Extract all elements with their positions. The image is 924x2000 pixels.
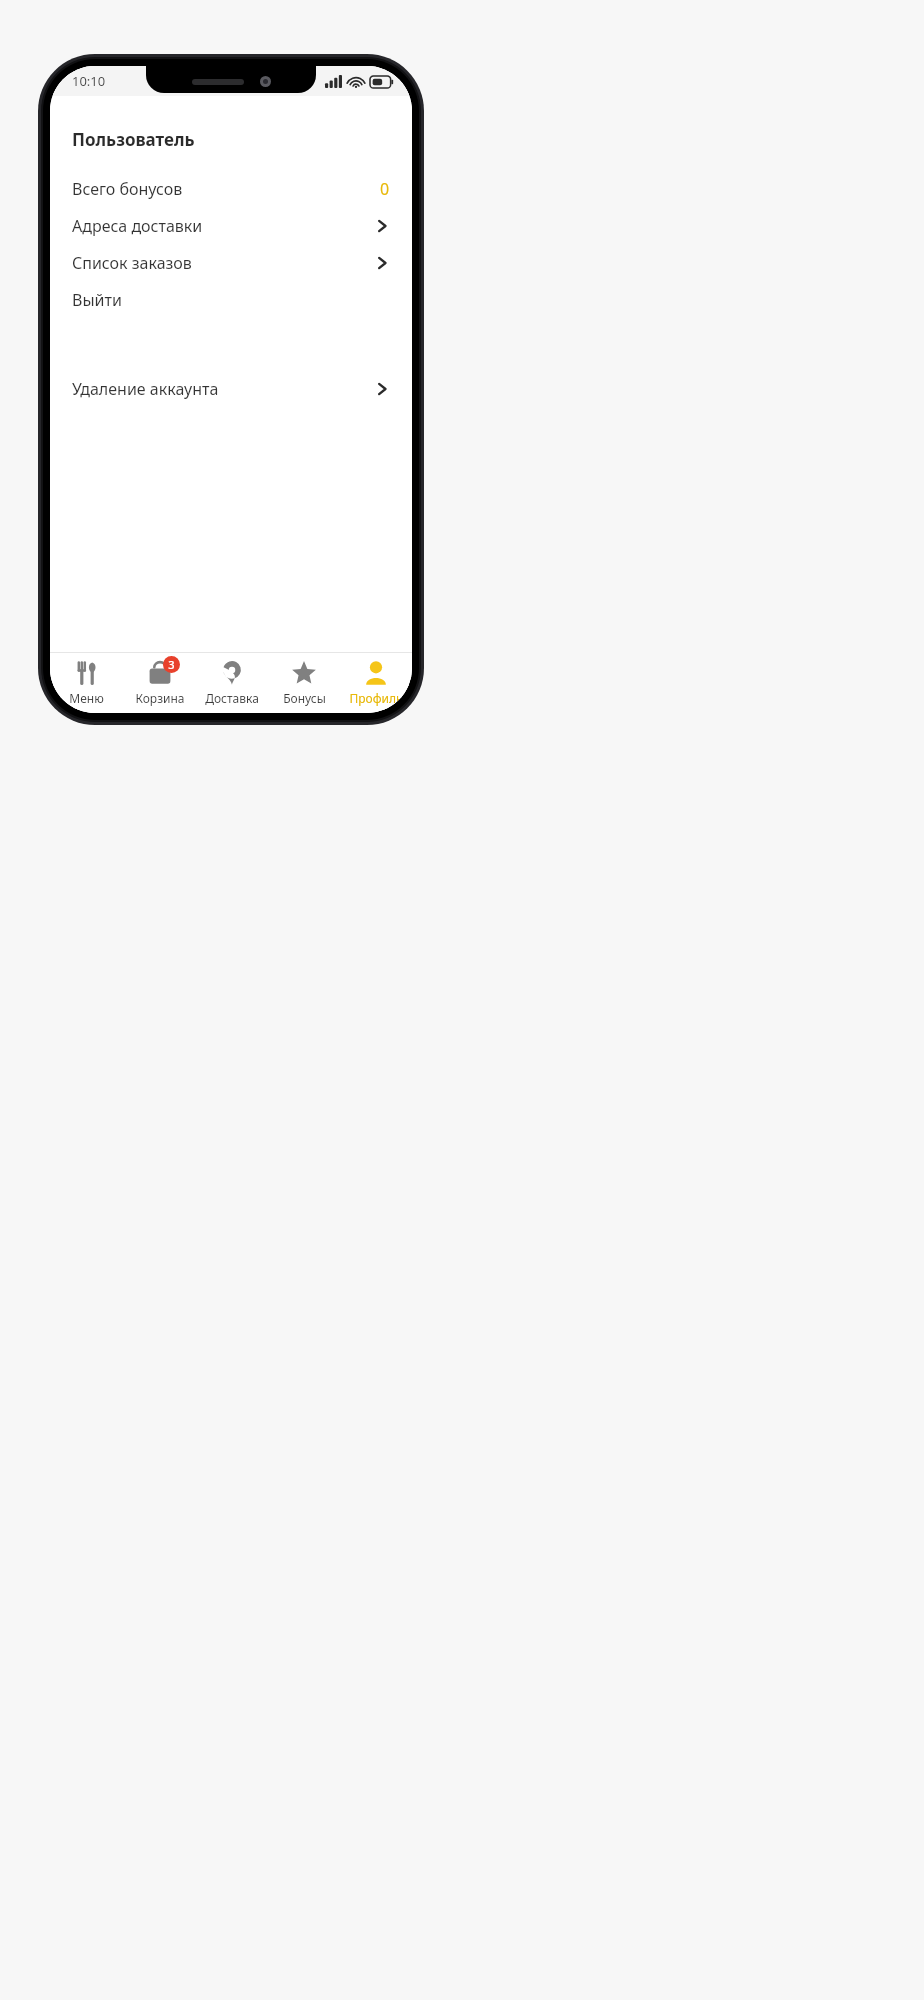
staticText: Бонусы <box>283 690 326 706</box>
button[interactable]: Профиль <box>340 653 412 713</box>
button[interactable]: Всего бонусов <box>50 170 412 207</box>
button[interactable]: Доставка <box>196 653 268 713</box>
button[interactable]: Меню <box>50 653 123 713</box>
button[interactable]: Выйти <box>50 281 412 318</box>
staticText: Пользователь <box>72 128 195 151</box>
staticText: Всего бонусов <box>72 178 183 200</box>
staticText: Профиль <box>349 690 403 706</box>
staticText: Выйти <box>72 289 122 311</box>
staticText: Список заказов <box>72 252 192 274</box>
staticText: Доставка <box>205 690 259 706</box>
button[interactable]: Адреса доставки <box>50 207 412 244</box>
button[interactable]: Список заказов <box>50 244 412 281</box>
staticText: 0 <box>380 178 390 200</box>
button[interactable]: Корзина <box>123 653 196 713</box>
staticText: Корзина <box>135 690 185 706</box>
staticText: Удаление аккаунта <box>72 378 219 400</box>
button[interactable]: Удаление аккаунта <box>50 370 412 407</box>
staticText: 3 <box>168 657 175 672</box>
staticText: Меню <box>69 690 104 706</box>
staticText: Адреса доставки <box>72 215 203 237</box>
button[interactable]: Бонусы <box>268 653 340 713</box>
staticText: 10:10 <box>72 72 106 90</box>
